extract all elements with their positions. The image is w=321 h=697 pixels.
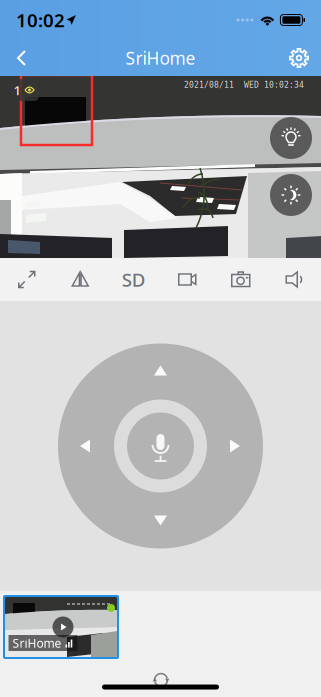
staticText: 10:02 bbox=[16, 8, 65, 32]
button[interactable]: Back bbox=[0, 41, 44, 75]
button[interactable]: Record bbox=[160, 258, 214, 301]
staticText: 1 bbox=[13, 81, 21, 99]
staticText: SD bbox=[122, 267, 146, 292]
button[interactable]: Settings bbox=[277, 41, 321, 75]
button[interactable]: SD bbox=[107, 258, 160, 301]
staticText: 2021/08/11 WED 10:02:34 bbox=[184, 80, 304, 90]
button[interactable]: SriHome camera bbox=[3, 595, 119, 659]
button[interactable]: Refresh bbox=[143, 665, 179, 695]
button[interactable]: Day night mode bbox=[270, 174, 312, 216]
button[interactable]: Pan tilt control bbox=[58, 343, 263, 548]
staticText: SriHome bbox=[12, 635, 61, 651]
button[interactable]: Snapshot bbox=[214, 258, 267, 301]
button[interactable]: Mirror bbox=[53, 258, 107, 301]
button[interactable]: Sound bbox=[267, 258, 321, 301]
button[interactable]: Light bbox=[270, 117, 312, 159]
button[interactable]: Fullscreen bbox=[0, 258, 53, 301]
staticText: SriHome bbox=[125, 46, 195, 69]
